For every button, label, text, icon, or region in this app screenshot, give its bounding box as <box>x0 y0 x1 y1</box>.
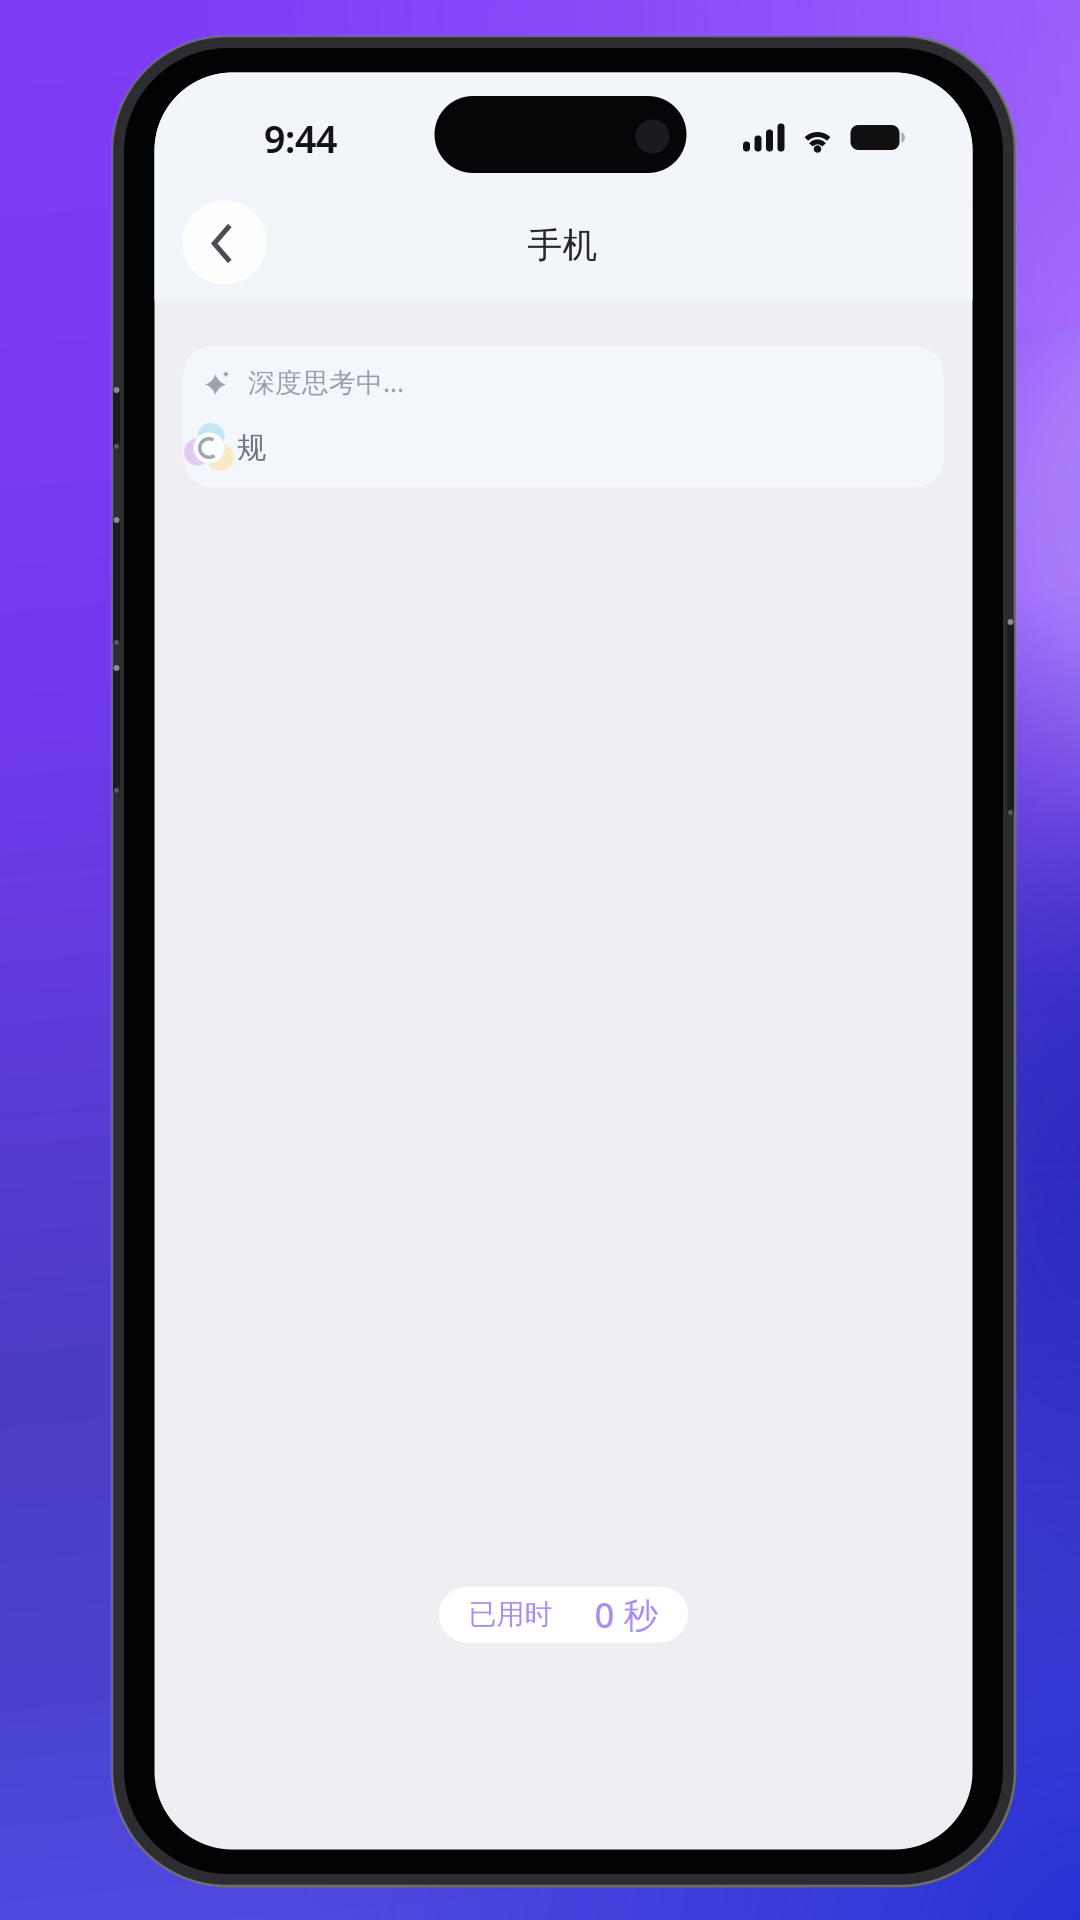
staticText: 9:44 <box>264 114 337 163</box>
staticText: 0 秒 <box>594 1591 658 1637</box>
staticText: 深度思考中... <box>248 364 404 400</box>
staticText: 已用时 <box>468 1597 552 1632</box>
button[interactable]: 返回 <box>182 200 266 284</box>
staticText: 规 <box>237 430 266 466</box>
staticText: 手机 <box>527 224 597 267</box>
